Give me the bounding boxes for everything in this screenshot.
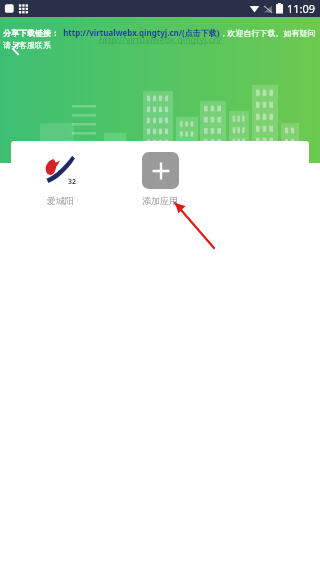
staticText: 爱城阳: [47, 195, 74, 206]
staticText: 32: [68, 177, 77, 187]
staticText: 分享下载链接： http://virtualwebx.qingtyj.cn/(点…: [3, 27, 317, 50]
button[interactable]: 添加应用: [129, 151, 191, 206]
staticText: http://virtualwebx.qingtyj.cn/: [99, 33, 222, 45]
staticText: 11:09: [287, 1, 316, 16]
staticText: 添加应用: [142, 195, 178, 206]
button[interactable]: 32: [29, 151, 91, 206]
button[interactable]: Back: [4, 37, 28, 61]
